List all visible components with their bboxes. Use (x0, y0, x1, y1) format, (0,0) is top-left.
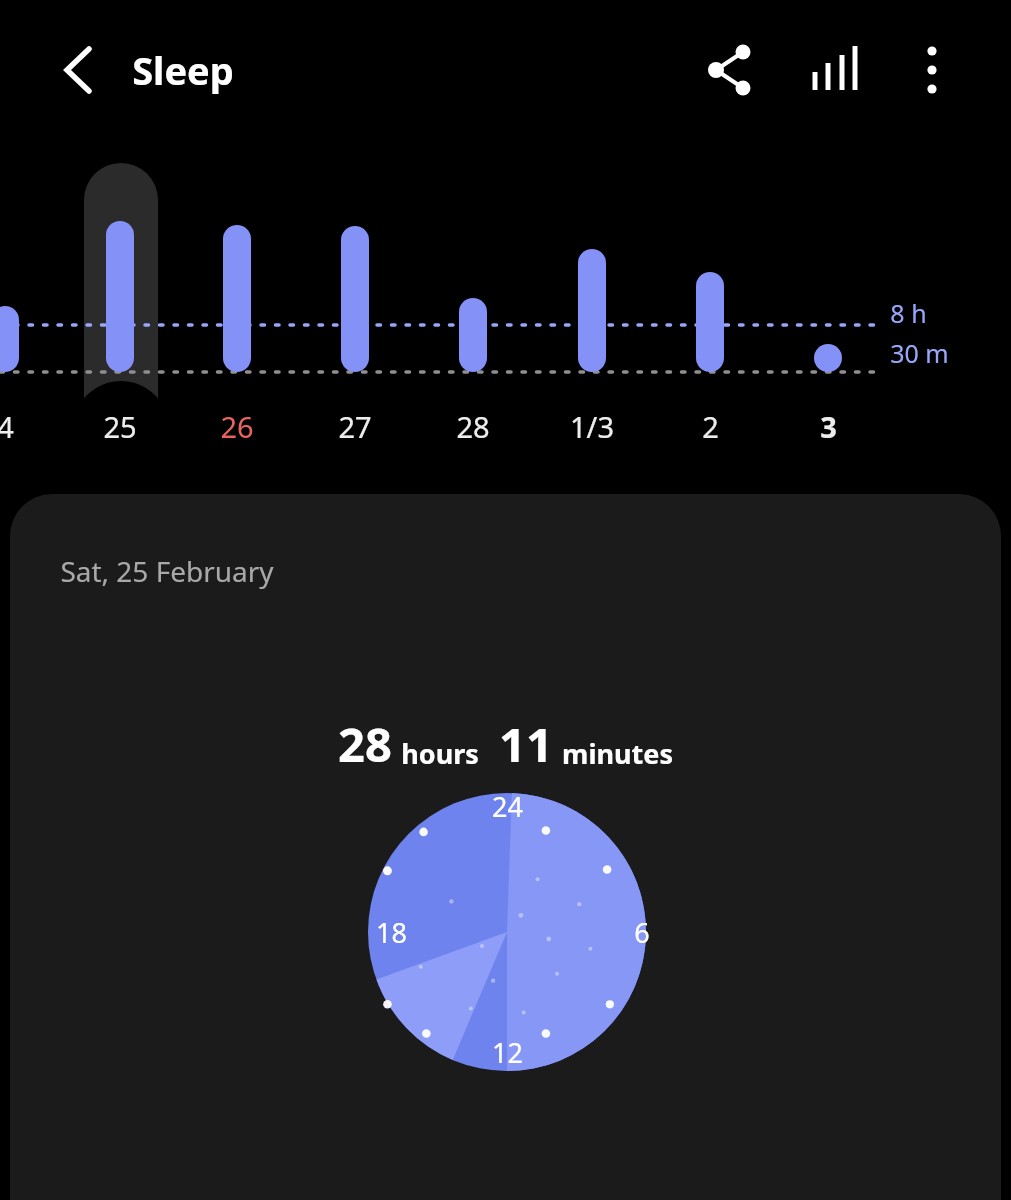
staticText: 1/3 (570, 407, 614, 446)
staticText: hours (401, 735, 479, 772)
staticText: 3 (820, 407, 837, 446)
staticText: 4 (0, 407, 14, 446)
staticText: 30 m (890, 336, 949, 370)
button[interactable]: More options (896, 34, 968, 106)
staticText: 2 (702, 407, 719, 446)
staticText: 25 (103, 407, 137, 446)
button[interactable]: 26 (192, 399, 282, 453)
button[interactable]: 25 (75, 399, 165, 453)
button[interactable]: 27 (310, 399, 400, 453)
button[interactable]: Sat, 25 February (10, 494, 1001, 1200)
button[interactable]: Sleep (132, 40, 234, 100)
button[interactable]: 28 (428, 399, 518, 453)
button[interactable]: 2 (665, 399, 755, 453)
button[interactable]: Back (42, 34, 114, 106)
staticText: 28 (338, 712, 392, 776)
staticText: 6 (634, 914, 650, 951)
staticText: 24 (492, 788, 523, 825)
staticText: 27 (338, 407, 372, 446)
staticText: 18 (376, 914, 407, 951)
staticText: minutes (562, 735, 673, 772)
staticText: 11 (499, 712, 553, 776)
staticText: 12 (492, 1034, 523, 1071)
staticText: Sat, 25 February (60, 552, 274, 590)
button[interactable]: 1/3 (547, 399, 637, 453)
button[interactable]: Trends chart (800, 34, 872, 106)
staticText: 28 (456, 407, 490, 446)
button[interactable] (84, 163, 158, 468)
staticText: 26 (220, 407, 254, 446)
staticText: Sleep (132, 44, 234, 96)
button[interactable]: 3 (783, 399, 873, 453)
button[interactable]: 4 (0, 399, 50, 453)
button[interactable]: Share (694, 34, 766, 106)
staticText: 8 h (890, 296, 927, 330)
